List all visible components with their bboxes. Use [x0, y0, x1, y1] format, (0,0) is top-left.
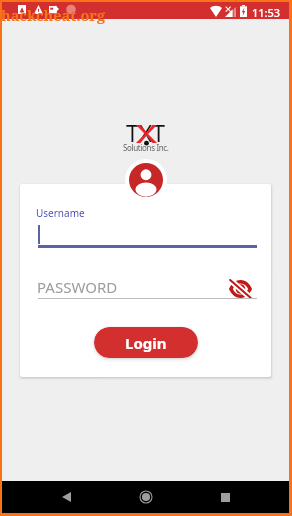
staticText: hackcheat.org: [1, 5, 106, 25]
button[interactable]: Show password: [228, 277, 252, 301]
button[interactable]: Recent apps: [210, 482, 240, 512]
button[interactable]: Back: [51, 482, 81, 512]
staticText: Solutions Inc.: [123, 142, 169, 153]
staticText: TXT: [126, 117, 166, 148]
button[interactable]: Login: [94, 327, 198, 358]
staticText: PASSWORD: [37, 277, 118, 297]
staticText: Login: [125, 333, 167, 353]
staticText: 11:53: [252, 5, 281, 20]
staticText: Username: [36, 206, 85, 220]
button[interactable]: Home: [131, 482, 161, 512]
